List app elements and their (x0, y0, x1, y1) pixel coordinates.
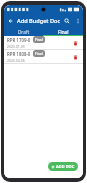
staticText: Draft (18, 29, 30, 35)
button[interactable]: Draft (4, 27, 43, 36)
button[interactable]: Search (61, 15, 73, 27)
button[interactable]: Final (43, 27, 83, 36)
staticText: Final (35, 51, 43, 56)
button[interactable]: RPR 1709-0 (4, 36, 83, 49)
staticText: RPR 1808-0 (7, 51, 31, 57)
staticText: Final (35, 37, 43, 42)
button[interactable]: More options (73, 16, 82, 25)
button[interactable]: Back (4, 14, 17, 27)
staticText: 2023-01-05 (7, 44, 25, 49)
button[interactable]: RPR 1808-0 (4, 50, 83, 63)
button[interactable]: Delete (70, 38, 80, 48)
staticText: Final (58, 29, 69, 35)
staticText: Add Budget Doc (17, 17, 61, 25)
staticText: ADD DOC (56, 164, 75, 169)
staticText: RPR 1709-0 (7, 37, 31, 43)
staticText: 2023-04-06 (7, 58, 25, 63)
button[interactable]: ADD DOC (48, 162, 78, 171)
button[interactable]: Delete (70, 52, 80, 62)
